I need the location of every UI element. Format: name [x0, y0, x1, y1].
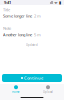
staticText: Note	[3, 26, 11, 31]
staticText: Some longer line	[3, 13, 32, 19]
button[interactable]: Upload	[32, 84, 64, 95]
button[interactable]: Home	[0, 84, 32, 95]
staticText: ıll ᯤ ▮	[50, 0, 61, 5]
staticText: 9:41	[4, 0, 11, 5]
staticText: Upload	[43, 90, 53, 94]
staticText: 5 m	[34, 32, 41, 37]
staticText: Continue	[24, 75, 43, 81]
staticText: Title	[3, 7, 10, 12]
staticText: Updated	[26, 43, 38, 47]
staticText: Another long line	[3, 32, 32, 37]
staticText: 2 m	[34, 13, 41, 19]
staticText: Home	[12, 90, 20, 94]
button[interactable]: Continue	[2, 74, 62, 82]
